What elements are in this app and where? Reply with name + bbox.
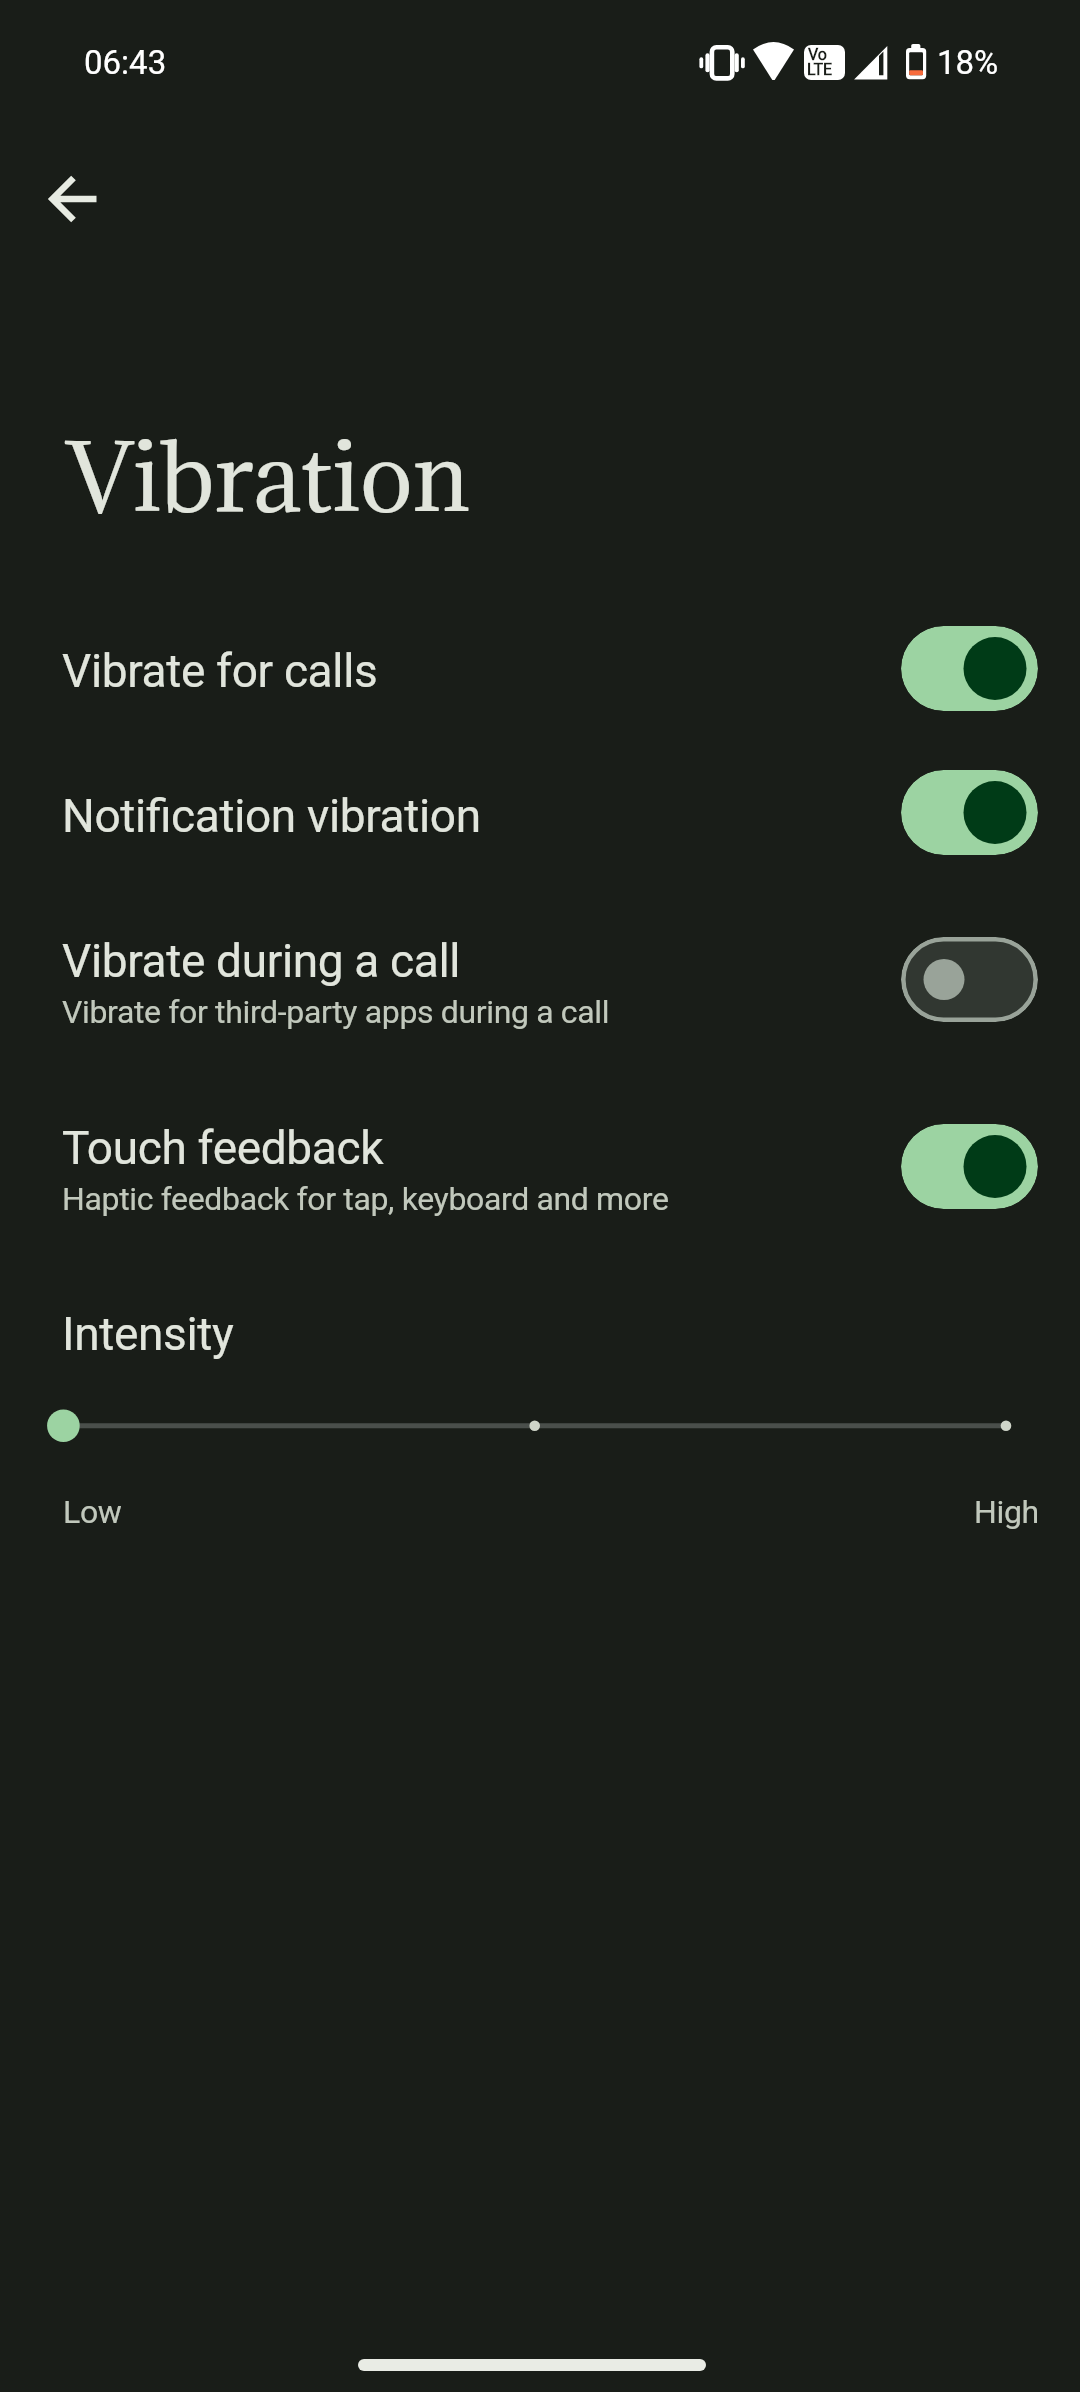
staticText: 18% — [937, 43, 999, 82]
button[interactable]: Vibrate for calls — [0, 599, 1080, 743]
button[interactable]: Touch feedback — [0, 1076, 1080, 1262]
staticText: Vibration — [67, 416, 470, 537]
staticText: Vo — [808, 45, 827, 64]
staticText: High — [974, 1493, 1039, 1531]
button[interactable]: Vibration intensity — [0, 1396, 1080, 1456]
button[interactable]: Back — [29, 154, 119, 244]
staticText: Haptic feedback for tap, keyboard and mo… — [62, 1180, 669, 1218]
button[interactable]: Notification vibration — [0, 744, 1080, 888]
staticText: Low — [63, 1493, 122, 1531]
button[interactable]: Vibrate during a call — [0, 889, 1080, 1075]
staticText: Intensity — [62, 1307, 234, 1361]
staticText: Notification vibration — [62, 789, 481, 843]
staticText: Vibrate for third-party apps during a ca… — [62, 993, 610, 1031]
staticText: Vibrate for calls — [62, 644, 378, 698]
staticText: 06:43 — [84, 43, 167, 82]
staticText: LTE — [807, 60, 833, 79]
button[interactable]: On — [901, 770, 1038, 855]
staticText: Vibrate during a call — [62, 934, 461, 988]
button[interactable]: Off — [901, 937, 1038, 1022]
button[interactable]: On — [901, 1124, 1038, 1209]
button[interactable]: On — [901, 626, 1038, 711]
staticText: Touch feedback — [62, 1121, 384, 1175]
